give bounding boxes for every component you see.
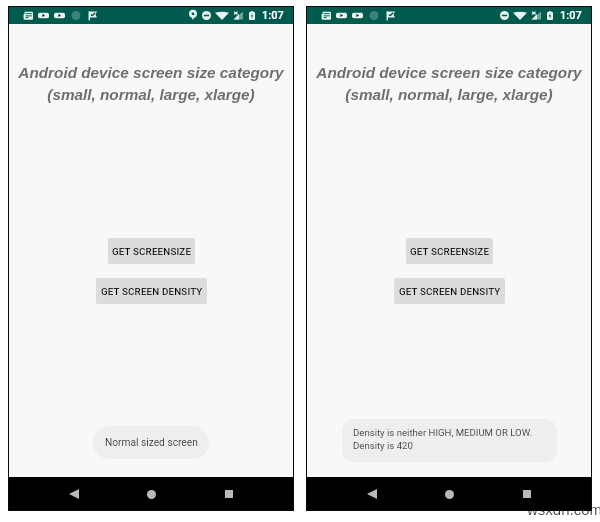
button[interactable]: Back (61, 481, 87, 507)
button[interactable]: GET SCREENSIZE (108, 238, 195, 264)
button[interactable]: Recent apps (216, 481, 242, 507)
button[interactable]: GET SCREENSIZE (406, 238, 493, 264)
button[interactable]: Recent apps (514, 481, 540, 507)
staticText: GET SCREENSIZE (112, 246, 192, 257)
staticText: GET SCREENSIZE (410, 246, 490, 257)
staticText: 1:07 (560, 9, 582, 22)
staticText: Density is neither HIGH, MEDIUM OR LOW. … (353, 427, 533, 452)
staticText: Android device screen size category (sma… (9, 64, 293, 103)
button[interactable]: GET SCREEN DENSITY (394, 278, 505, 304)
staticText: Android device screen size category (sma… (307, 64, 591, 103)
button[interactable]: Home (436, 481, 462, 507)
staticText: wsxdn.com (527, 501, 600, 518)
staticText: 1:07 (262, 9, 284, 22)
staticText: GET SCREEN DENSITY (101, 286, 203, 297)
staticText: Normal sized screen (105, 437, 198, 449)
button[interactable]: GET SCREEN DENSITY (96, 278, 207, 304)
button[interactable]: Home (138, 481, 164, 507)
staticText: GET SCREEN DENSITY (399, 286, 501, 297)
button[interactable]: Back (359, 481, 385, 507)
